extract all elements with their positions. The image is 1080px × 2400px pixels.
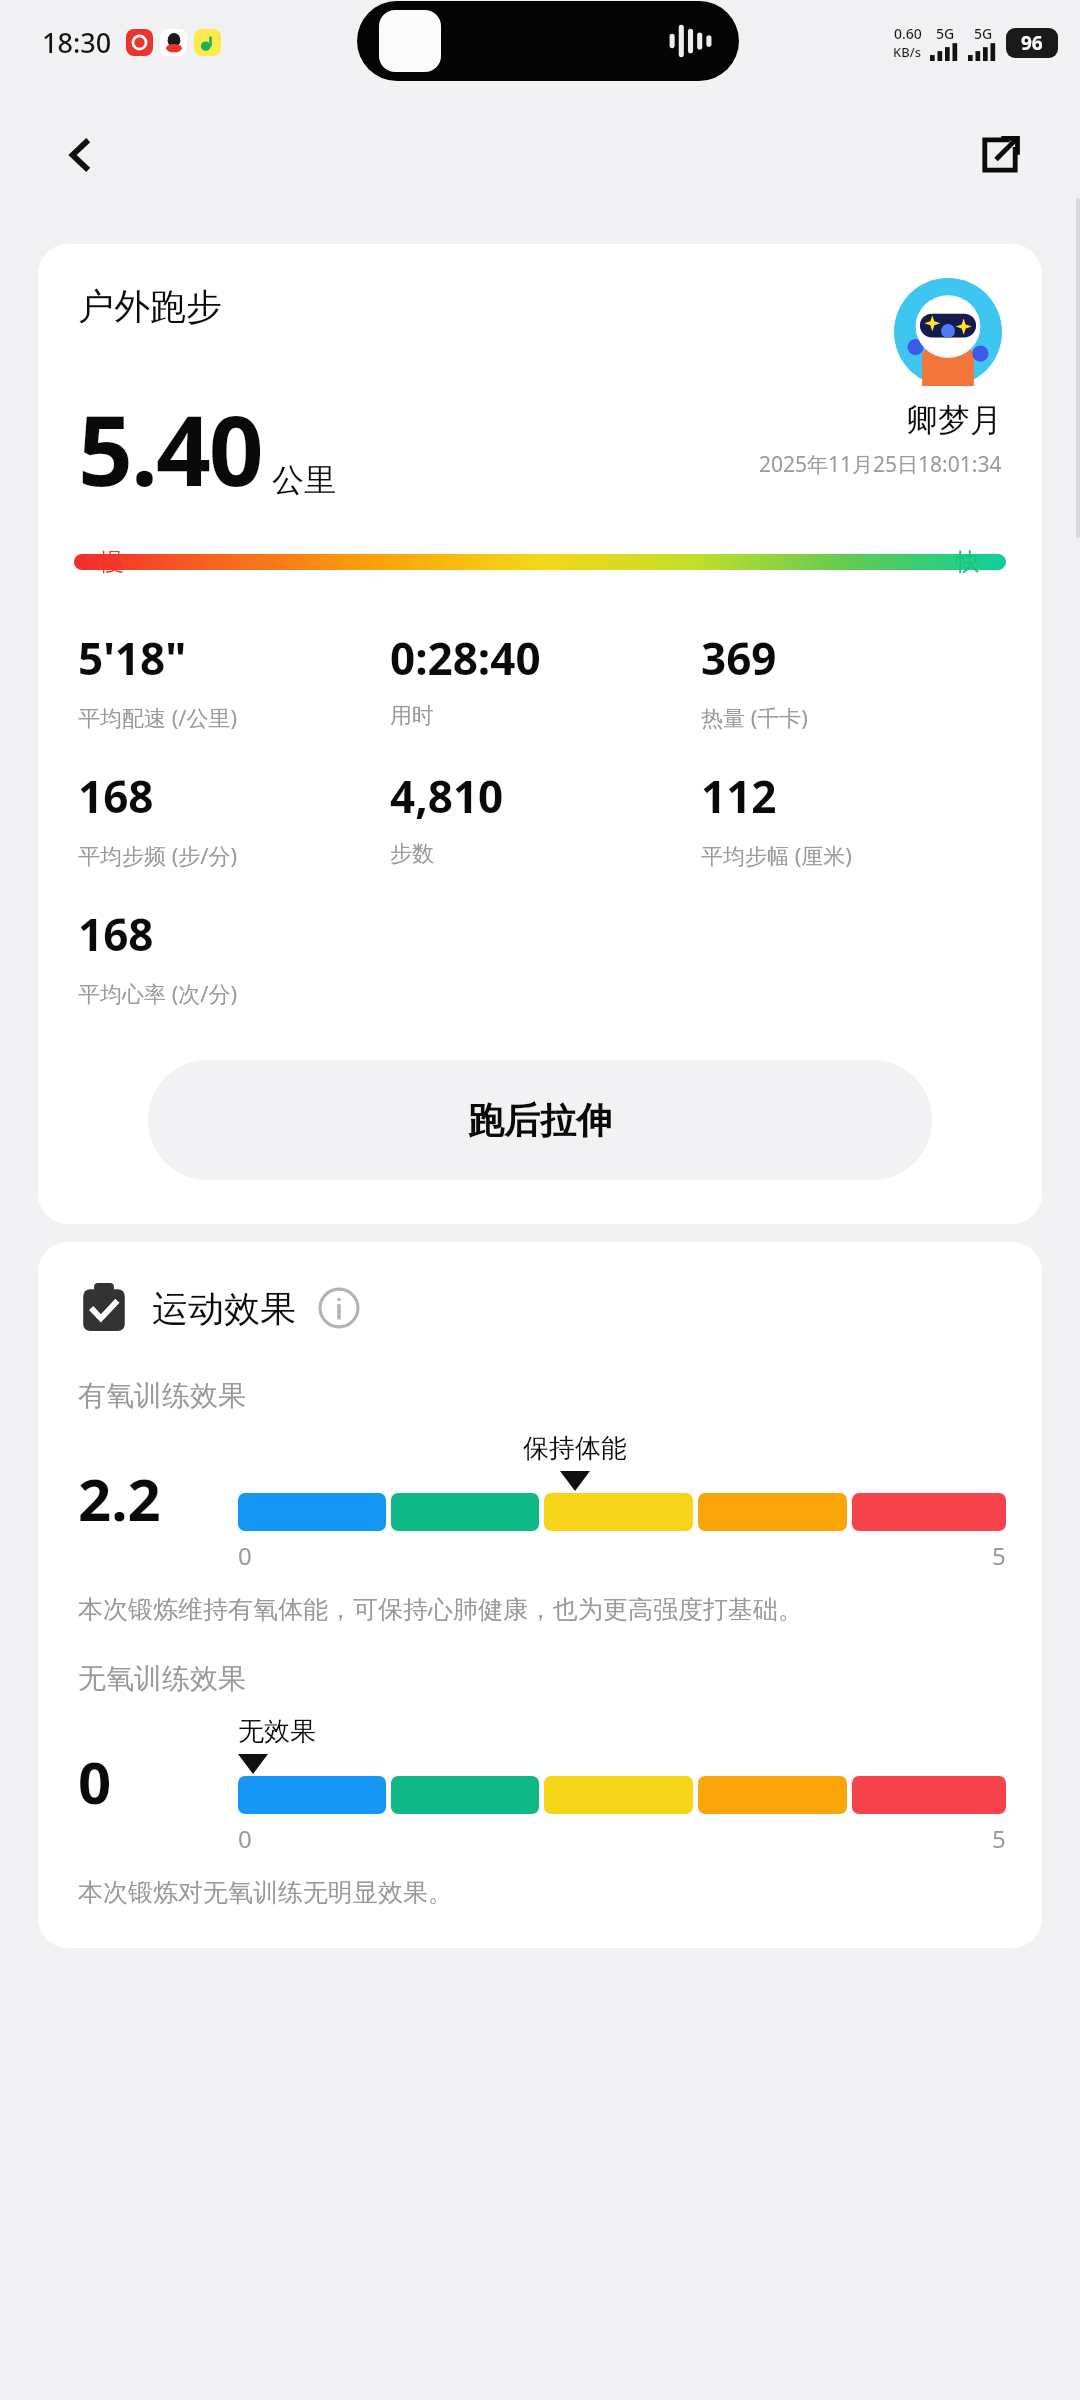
staticText: 快 xyxy=(956,547,980,577)
staticText: 本次锻炼维持有氧体能，可保持心肺健康，也为更高强度打基础。 xyxy=(78,1594,803,1625)
staticText: 5G xyxy=(936,24,955,43)
staticText: 168 xyxy=(78,904,154,964)
staticText: 用时 xyxy=(390,702,434,730)
staticText: 5.40 xyxy=(78,383,262,514)
staticText: 2.2 xyxy=(78,1459,161,1538)
button[interactable]: Share xyxy=(960,115,1040,195)
staticText: 平均心率 (次/分) xyxy=(78,978,238,1008)
staticText: 96 xyxy=(1021,30,1043,56)
staticText: 无效果 xyxy=(238,1715,316,1748)
staticText: 运动效果 xyxy=(152,1286,296,1331)
staticText: 平均步幅 (厘米) xyxy=(701,840,852,870)
staticText: 热量 (千卡) xyxy=(701,702,808,732)
staticText: 112 xyxy=(701,766,777,826)
staticText: 慢 xyxy=(100,547,124,577)
button[interactable]: Back xyxy=(42,117,118,193)
staticText: 4,810 xyxy=(390,766,504,826)
staticText: 5 xyxy=(992,1539,1006,1572)
staticText: 无氧训练效果 xyxy=(78,1661,246,1696)
staticText: 2025年11月25日18:01:34 xyxy=(759,450,1002,479)
button[interactable]: Info xyxy=(316,1285,362,1331)
staticText: 0 xyxy=(238,1822,252,1855)
staticText: 户外跑步 xyxy=(78,284,222,329)
staticText: 保持体能 xyxy=(523,1432,627,1465)
staticText: 卿梦月 xyxy=(906,400,1002,440)
staticText: 168 xyxy=(78,766,154,826)
staticText: 5G xyxy=(974,24,993,43)
staticText: 0 xyxy=(238,1539,252,1572)
staticText: 18:30 xyxy=(42,24,112,61)
staticText: 平均配速 (/公里) xyxy=(78,702,238,732)
staticText: 有氧训练效果 xyxy=(78,1378,246,1413)
staticText: 369 xyxy=(701,628,777,688)
staticText: 0.60 xyxy=(894,24,922,43)
staticText: 公里 xyxy=(272,460,336,500)
staticText: 平均步频 (步/分) xyxy=(78,840,238,870)
staticText: 本次锻炼对无氧训练无明显效果。 xyxy=(78,1877,453,1908)
staticText: 0:28:40 xyxy=(390,628,541,688)
staticText: 5'18" xyxy=(78,628,187,688)
staticText: 跑后拉伸 xyxy=(468,1098,612,1143)
staticText: 0 xyxy=(78,1742,112,1821)
staticText: KB/s xyxy=(893,43,922,61)
staticText: 步数 xyxy=(390,840,434,868)
button[interactable]: 跑后拉伸 xyxy=(148,1060,932,1180)
staticText: 5 xyxy=(992,1822,1006,1855)
